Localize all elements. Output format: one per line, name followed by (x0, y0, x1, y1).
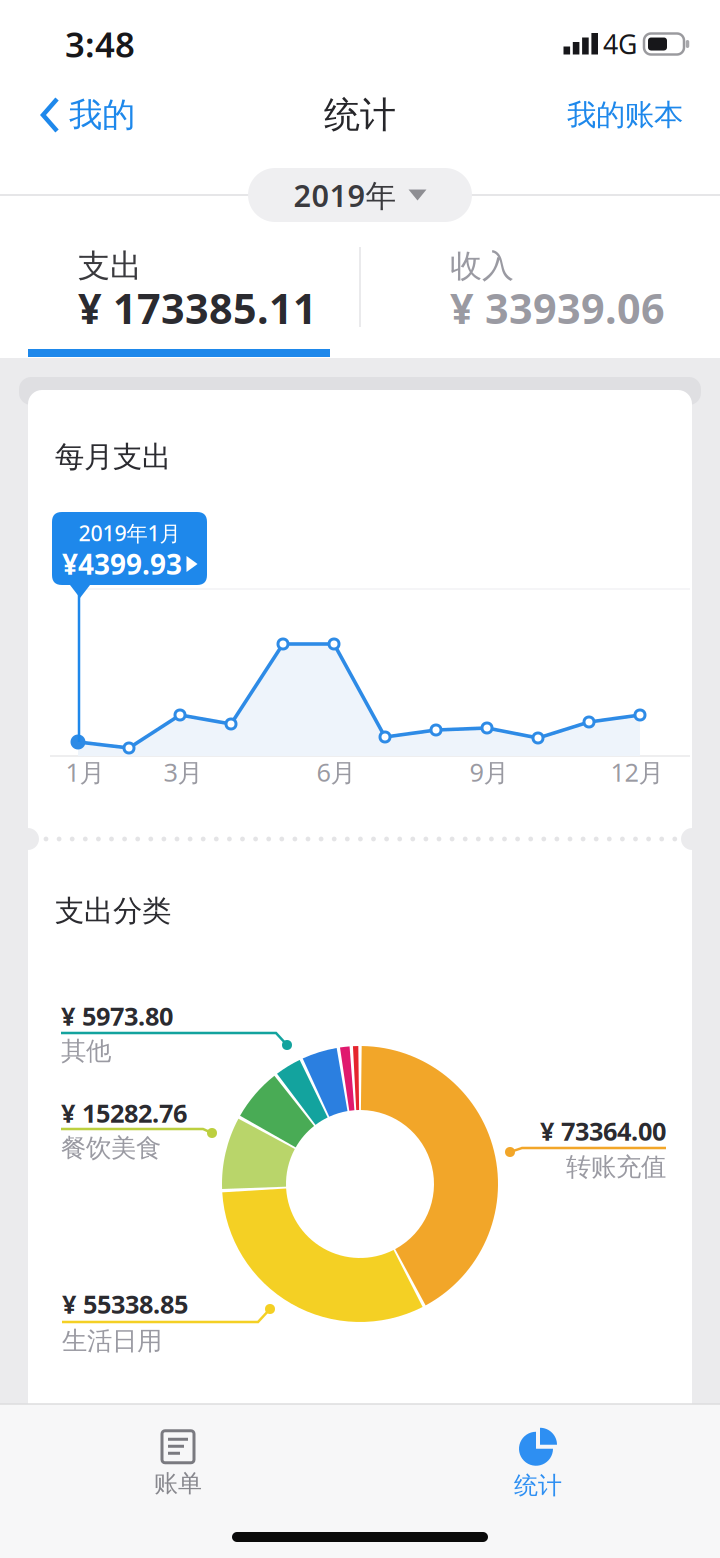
staticText: 支出 (78, 246, 142, 286)
staticText: ¥ 33939.06 (450, 281, 665, 335)
staticText: 12月 (610, 755, 663, 789)
staticText: 支出分类 (55, 893, 171, 929)
staticText: 3:48 (65, 21, 135, 67)
staticText: 2019年1月 (78, 519, 180, 547)
staticText: 6月 (316, 755, 355, 789)
staticText: 账单 (154, 1469, 202, 1498)
staticText: ¥ 55338.85 (62, 1287, 188, 1321)
staticText: 4G (603, 26, 637, 62)
staticText: ¥ 15282.76 (61, 1096, 187, 1130)
staticText: ¥ 5973.80 (61, 999, 173, 1033)
staticText: 2019年 (293, 175, 396, 215)
staticText: 1月 (65, 755, 104, 789)
staticText: 我的 (69, 94, 135, 135)
staticText: 收入 (450, 246, 514, 286)
staticText: ¥4399.93 (62, 545, 182, 583)
staticText: 3月 (163, 755, 202, 789)
button[interactable]: 统计 (458, 1414, 618, 1514)
staticText: 统计 (324, 93, 396, 137)
button[interactable]: 我的账本 (567, 97, 683, 133)
button[interactable]: 账单 (98, 1414, 258, 1514)
staticText: 我的账本 (567, 97, 683, 133)
button[interactable]: 支出 (78, 220, 350, 344)
staticText: 餐饮美食 (61, 1132, 161, 1163)
staticText: 其他 (61, 1035, 111, 1066)
staticText: 统计 (514, 1471, 562, 1500)
staticText: 转账充值 (566, 1151, 666, 1182)
button[interactable]: 收入 (450, 220, 710, 344)
staticText: 每月支出 (55, 439, 171, 475)
staticText: ¥ 73364.00 (540, 1114, 666, 1148)
button[interactable]: 2019年 (248, 168, 472, 222)
button[interactable]: 2019年1月 (52, 512, 207, 598)
staticText: 9月 (469, 755, 508, 789)
button[interactable]: 我的 (41, 94, 135, 135)
staticText: 生活日用 (62, 1325, 162, 1356)
staticText: ¥ 173385.11 (78, 281, 317, 335)
